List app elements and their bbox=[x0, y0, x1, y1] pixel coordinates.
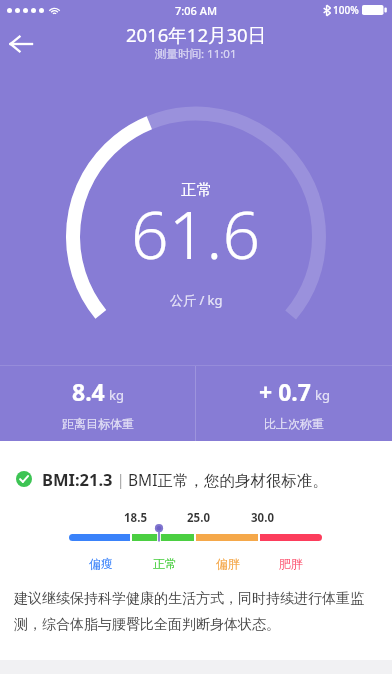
staticText: 建议继续保持科学健康的生活方式，同时持续进行体重监测，综合体脂与腰臀比全面判断身… bbox=[14, 590, 376, 633]
staticText: 2016年12月30日 bbox=[126, 22, 267, 47]
staticText: 30.0 bbox=[251, 510, 274, 526]
staticText: BMI:21.3 bbox=[42, 468, 113, 490]
staticText: 测量时间: 11:01 bbox=[155, 46, 237, 62]
staticText: 正常 bbox=[153, 556, 177, 571]
staticText: 比上次称重 bbox=[264, 416, 324, 431]
staticText: 18.5 bbox=[124, 510, 147, 526]
staticText: kg bbox=[109, 386, 124, 404]
staticText: 偏胖 bbox=[216, 556, 240, 571]
staticText: 距离目标体重 bbox=[62, 416, 134, 431]
staticText: 偏瘦 bbox=[89, 556, 113, 571]
staticText: 肥胖 bbox=[279, 556, 303, 571]
staticText: + 0.7 bbox=[259, 376, 311, 407]
staticText: 61.6 bbox=[131, 188, 261, 278]
staticText: 正常 bbox=[181, 180, 212, 200]
staticText: kg bbox=[315, 386, 330, 404]
button[interactable]: BMI:21.3 bbox=[0, 465, 392, 493]
button[interactable]: 8.4 bbox=[0, 366, 195, 441]
staticText: 公斤 / kg bbox=[170, 291, 223, 309]
staticText: | bbox=[113, 470, 128, 489]
staticText: 25.0 bbox=[187, 510, 210, 526]
button[interactable]: + 0.7 bbox=[196, 366, 392, 441]
staticText: 8.4 bbox=[72, 376, 105, 407]
staticText: BMI正常，您的身材很标准。 bbox=[128, 469, 328, 490]
button[interactable]: Back bbox=[0, 20, 45, 68]
staticText: 7:06 AM bbox=[175, 3, 218, 18]
staticText: 100% bbox=[333, 3, 359, 17]
